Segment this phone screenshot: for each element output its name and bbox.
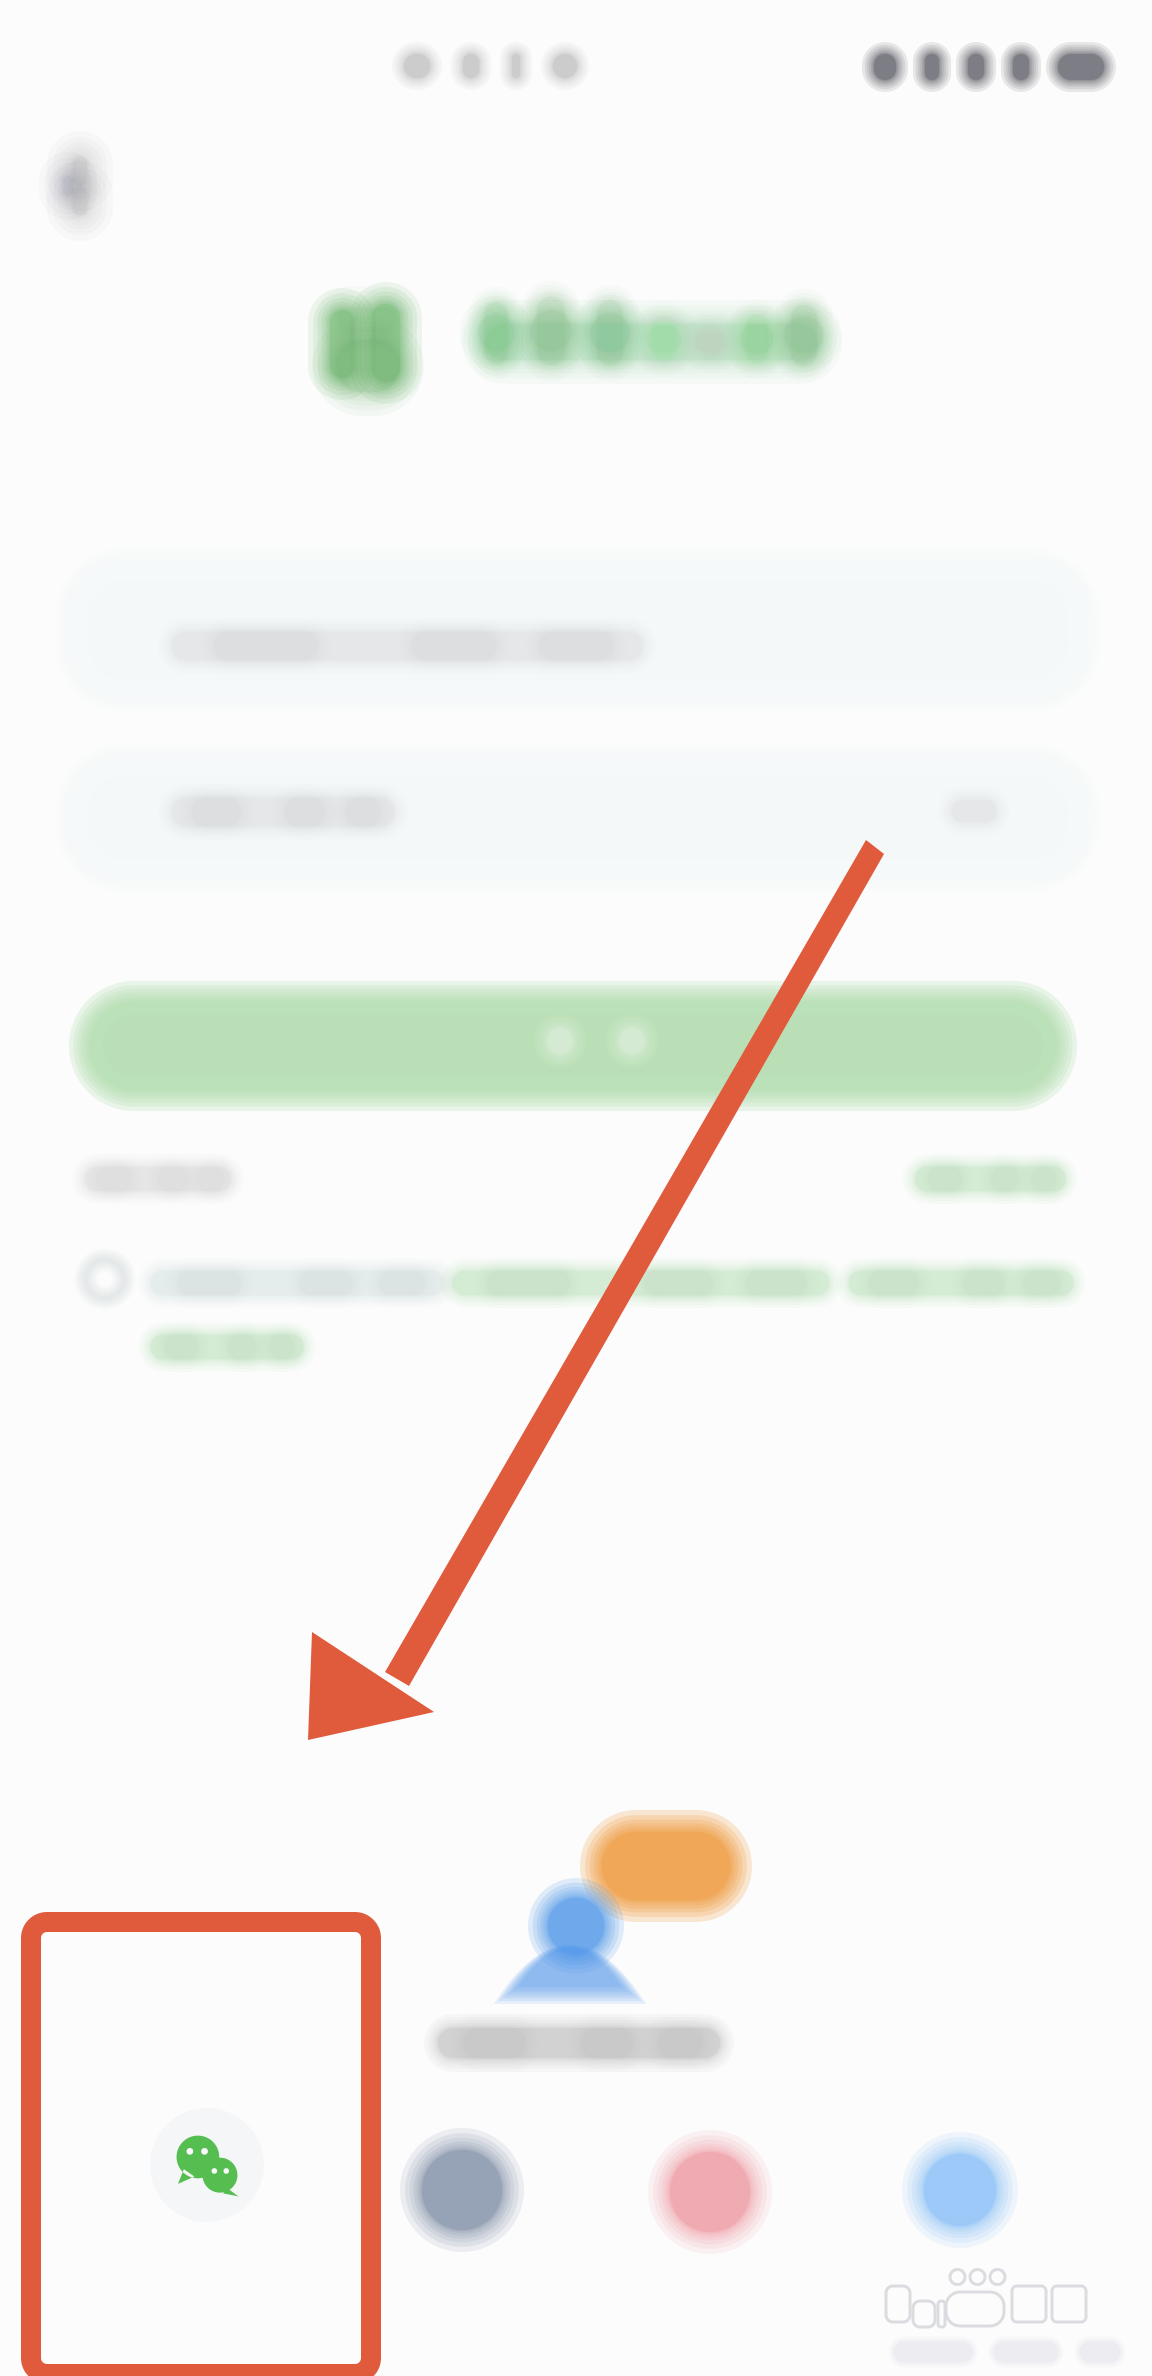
button[interactable]: Sign in with QQ — [400, 2128, 524, 2252]
button[interactable]: Cannot log in — [72, 1154, 244, 1204]
button[interactable]: Terms continued — [138, 1322, 316, 1372]
button[interactable]: Sign in with WeChat — [150, 2108, 264, 2222]
button[interactable]: Sign in with Weibo — [648, 2130, 772, 2254]
button[interactable]: More options — [902, 1154, 1078, 1204]
button[interactable]: Privacy policy — [836, 1258, 1086, 1308]
button[interactable]: Back — [22, 130, 118, 242]
button[interactable]: User agreement — [440, 1258, 842, 1308]
button[interactable]: Password field — [52, 740, 1104, 896]
button[interactable]: Account field — [52, 544, 1104, 716]
button[interactable]: Log in — [66, 978, 1080, 1114]
button[interactable]: Sign in with Alipay — [902, 2132, 1018, 2248]
button[interactable]: Agree to terms — [70, 1244, 140, 1314]
